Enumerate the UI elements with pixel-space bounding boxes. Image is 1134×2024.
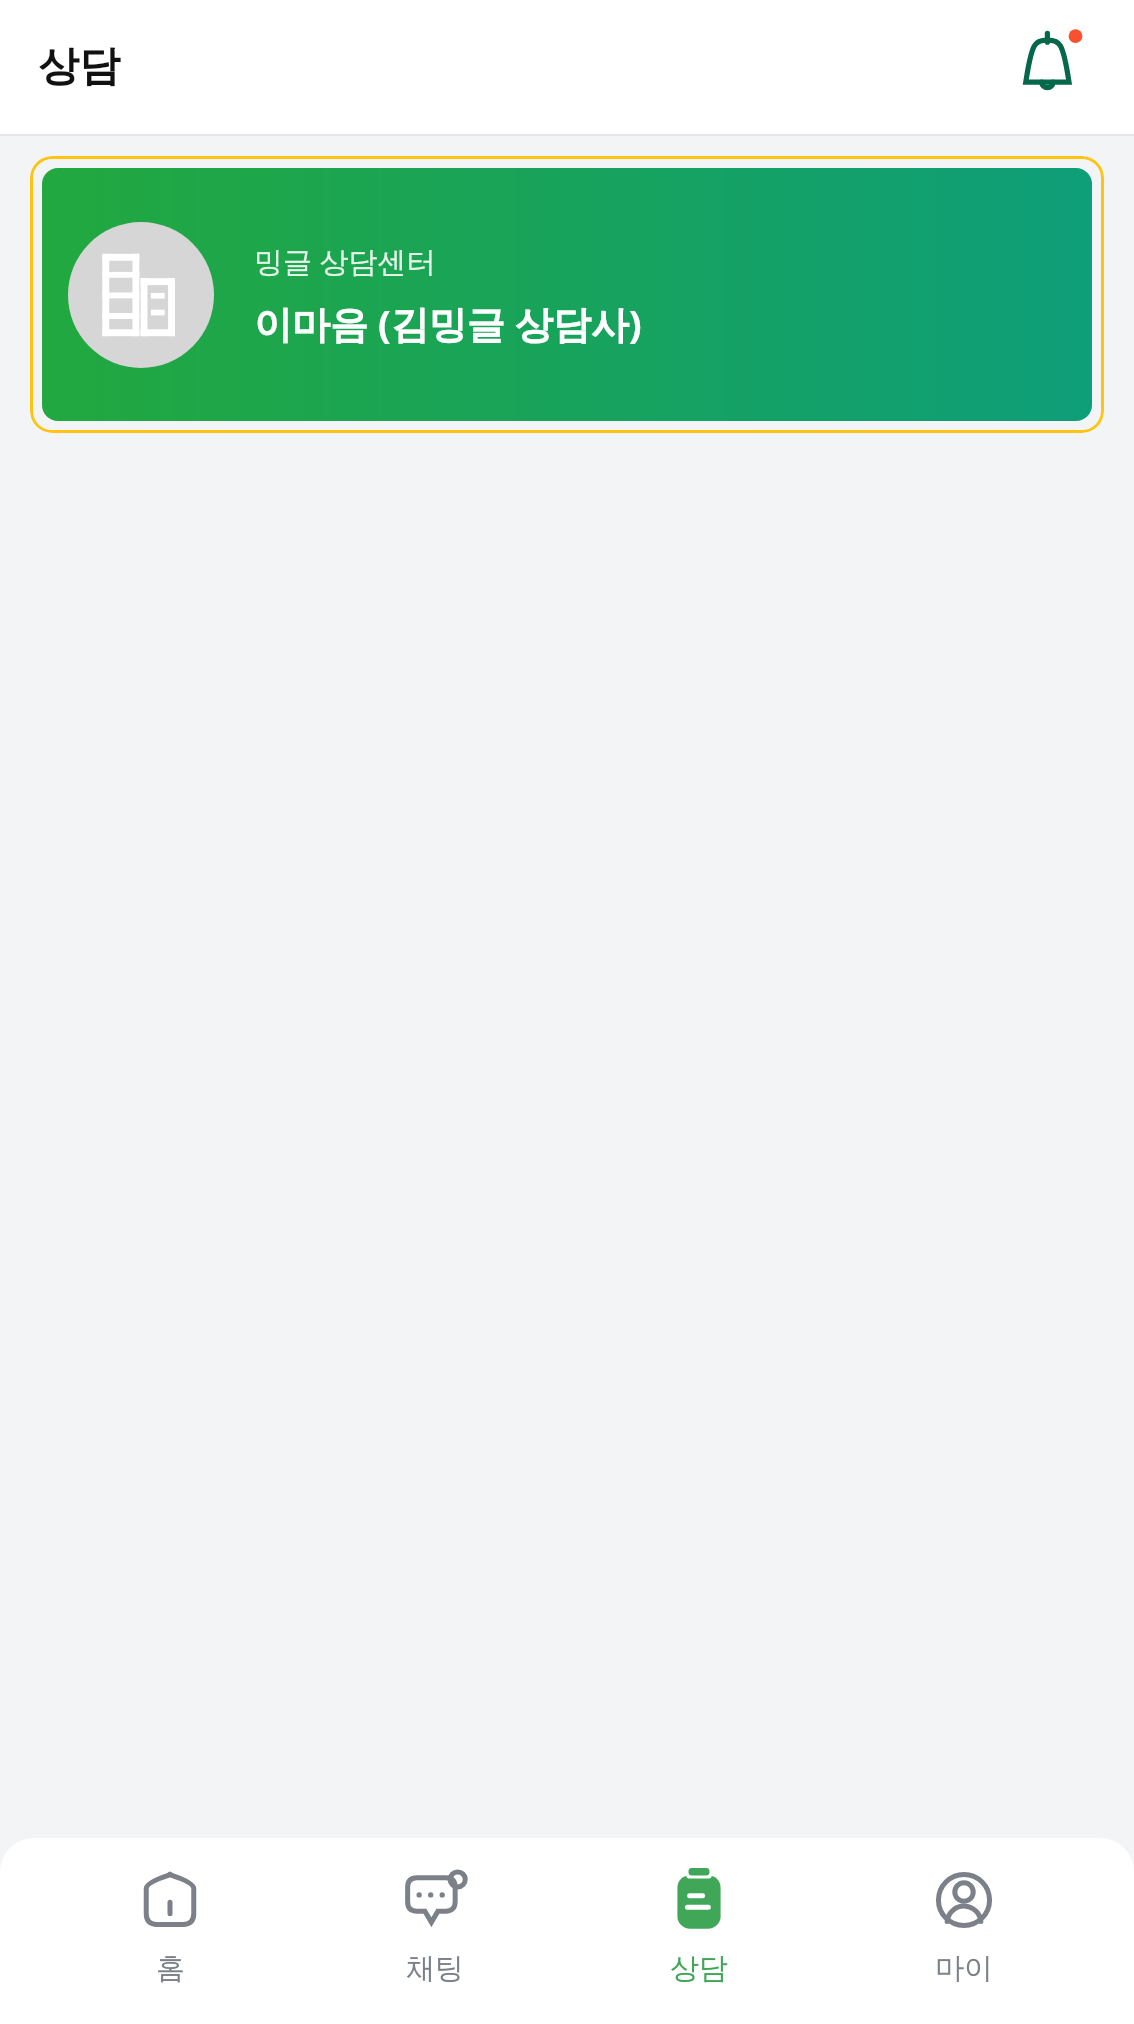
staticText: 마이 xyxy=(935,1950,993,1987)
button[interactable]: 마이 xyxy=(869,1858,1059,1991)
staticText: 상담 xyxy=(38,41,120,93)
button[interactable]: 홈 xyxy=(75,1858,265,1991)
staticText: 홈 xyxy=(156,1950,185,1987)
staticText: 이마음 (김밍글 상담사) xyxy=(254,297,642,349)
staticText: 채팅 xyxy=(406,1950,464,1987)
staticText: 상담 xyxy=(670,1950,728,1987)
button[interactable]: 채팅 xyxy=(340,1858,530,1991)
button[interactable]: 밍글 상담센터 xyxy=(30,156,1104,433)
button[interactable]: 상담 xyxy=(604,1858,794,1991)
staticText: 밍글 상담센터 xyxy=(254,241,436,281)
button[interactable]: Notifications xyxy=(1006,21,1098,113)
